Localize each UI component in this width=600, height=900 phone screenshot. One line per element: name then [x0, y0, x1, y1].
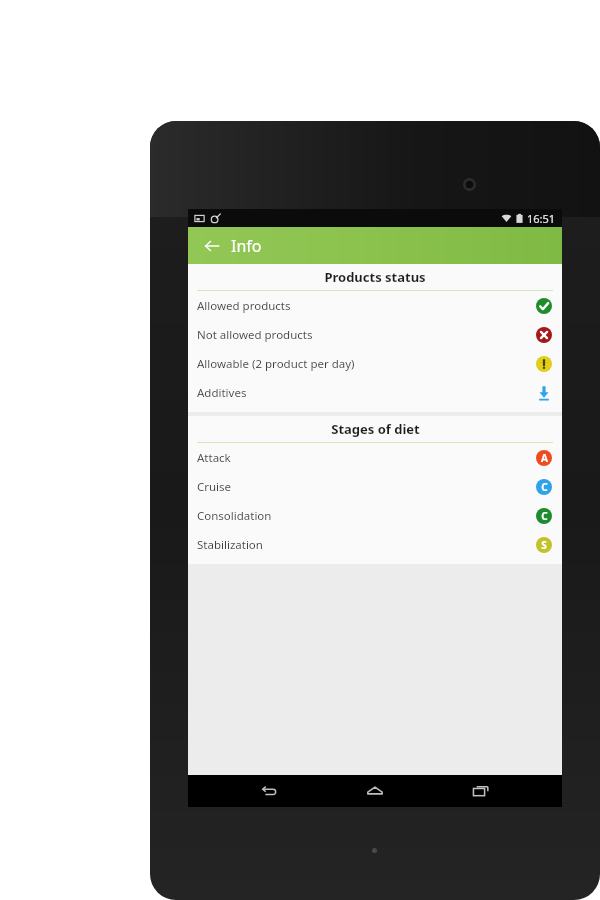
staticText: S [541, 538, 547, 552]
staticText: Cruise [197, 479, 232, 495]
staticText: Consolidation [197, 508, 272, 524]
button[interactable]: Home [350, 775, 400, 807]
button[interactable]: Back [244, 775, 294, 807]
button[interactable]: Additives [188, 378, 562, 407]
staticText: C [541, 480, 548, 494]
staticText: Attack [197, 450, 231, 466]
button[interactable]: Stabilization [188, 530, 562, 559]
button[interactable]: Back [197, 231, 227, 261]
button[interactable]: Allowable (2 product per day) [188, 349, 562, 378]
staticText: Allowable (2 product per day) [197, 356, 355, 372]
staticText: A [541, 451, 548, 465]
button[interactable]: Recent apps [456, 775, 506, 807]
staticText: Stages of diet [331, 420, 420, 438]
button[interactable]: Attack [188, 443, 562, 472]
button[interactable]: Cruise [188, 472, 562, 501]
staticText: C [541, 509, 548, 523]
button[interactable]: Allowed products [188, 291, 562, 320]
staticText: Products status [324, 268, 426, 286]
staticText: 16:51 [527, 211, 556, 226]
staticText: Stabilization [197, 537, 263, 553]
button[interactable]: Not allowed products [188, 320, 562, 349]
staticText: Allowed products [197, 298, 291, 314]
staticText: Additives [197, 385, 247, 401]
button[interactable]: Consolidation [188, 501, 562, 530]
staticText: Not allowed products [197, 327, 313, 343]
staticText: Info [231, 235, 262, 257]
